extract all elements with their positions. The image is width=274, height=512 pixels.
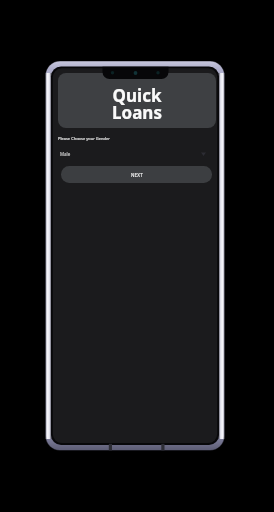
staticText: Please Choose your Gender xyxy=(58,136,110,141)
button[interactable]: NEXT xyxy=(61,166,212,183)
staticText: Quick Loans xyxy=(58,84,216,124)
button[interactable]: Male xyxy=(58,146,216,162)
staticText: Male xyxy=(60,151,71,157)
staticText: NEXT xyxy=(131,172,143,178)
